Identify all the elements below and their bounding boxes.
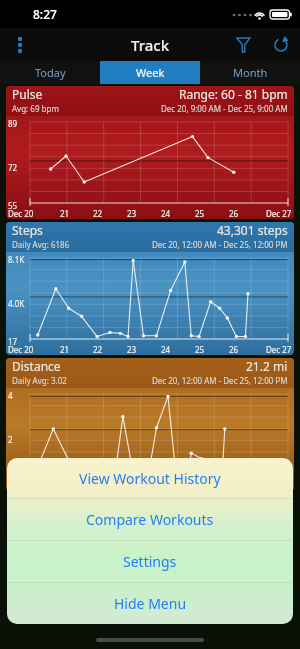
button[interactable]: Today <box>0 61 100 84</box>
staticText: 25 <box>195 344 205 355</box>
staticText: Daily Avg: 6186 <box>12 239 70 250</box>
staticText: Hide Menu <box>114 594 187 613</box>
staticText: 23 <box>127 480 137 491</box>
staticText: 22 <box>93 344 103 355</box>
staticText: 23 <box>127 208 137 219</box>
staticText: Month <box>233 65 268 80</box>
button[interactable]: Distance <box>6 358 294 491</box>
staticText: Dec 20, 12:00 AM - Dec 25, 12:00 PM <box>152 239 288 250</box>
staticText: Steps <box>12 222 43 238</box>
staticText: 25 <box>195 208 205 219</box>
staticText: Distance <box>12 358 61 374</box>
staticText: 25 <box>195 480 205 491</box>
staticText: 21 <box>60 208 70 219</box>
staticText: Dec 27 <box>266 208 292 219</box>
staticText: Settings <box>123 552 177 571</box>
staticText: Dec 20, 9:00 AM - Dec 25, 9:00 AM <box>161 103 288 114</box>
staticText: Daily Avg: 3.02 <box>12 375 67 386</box>
staticText: 24 <box>161 208 171 219</box>
staticText: Week <box>136 65 165 80</box>
staticText: 22 <box>93 480 103 491</box>
button[interactable]: Refresh <box>262 28 300 61</box>
staticText: Today <box>35 65 66 80</box>
staticText: 72 <box>8 162 18 173</box>
staticText: Dec 20 <box>8 344 34 355</box>
staticText: Pulse <box>12 86 43 102</box>
button[interactable]: Compare Workouts <box>7 499 293 540</box>
staticText: Dec 20 <box>8 208 34 219</box>
staticText: 23 <box>127 344 137 355</box>
staticText: 26 <box>229 208 239 219</box>
staticText: 24 <box>161 480 171 491</box>
button[interactable]: Hide Menu <box>7 583 293 624</box>
button[interactable]: More options <box>0 28 40 61</box>
staticText: 22 <box>93 208 103 219</box>
staticText: Compare Workouts <box>86 510 214 529</box>
button[interactable]: Week <box>100 61 200 84</box>
staticText: 8:27 <box>33 6 57 22</box>
staticText: Dec 27 <box>266 344 292 355</box>
button[interactable]: View Workout History <box>7 458 293 498</box>
staticText: Avg: 69 bpm <box>12 103 59 114</box>
staticText: 21 <box>60 344 70 355</box>
button[interactable]: Settings <box>7 541 293 582</box>
staticText: Track <box>131 35 170 55</box>
staticText: Range: 60 - 81 bpm <box>179 86 288 102</box>
staticText: 26 <box>229 344 239 355</box>
staticText: 17 <box>8 336 18 347</box>
staticText: 4.0K <box>8 298 25 309</box>
button[interactable]: Steps <box>6 222 294 355</box>
staticText: 21.2 mi <box>246 358 288 374</box>
staticText: Dec 20, 12:00 AM - Dec 25, 12:00 PM <box>152 375 288 386</box>
staticText: 43,301 steps <box>217 222 288 238</box>
button[interactable]: Filter <box>224 28 262 61</box>
staticText: 55 <box>8 200 18 211</box>
button[interactable]: Month <box>200 61 300 84</box>
staticText: View Workout History <box>79 469 221 488</box>
staticText: 8.1K <box>8 254 25 265</box>
staticText: 89 <box>8 118 18 129</box>
button[interactable]: Pulse <box>6 86 294 219</box>
staticText: 4 <box>8 390 13 401</box>
staticText: 2 <box>8 434 13 445</box>
staticText: 24 <box>161 344 171 355</box>
